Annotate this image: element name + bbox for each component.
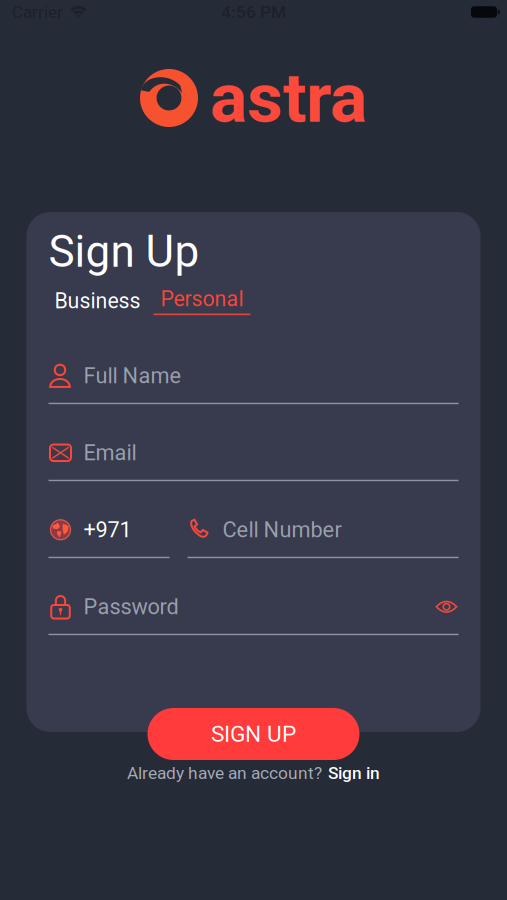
staticText: Personal: [160, 287, 243, 312]
staticText: SIGN UP: [211, 721, 296, 747]
button[interactable]: Business: [54, 288, 140, 313]
staticText: Business: [54, 288, 140, 313]
staticText: astra: [210, 57, 367, 139]
staticText: +971: [83, 517, 131, 542]
staticText: Already have an account?: [127, 763, 322, 783]
staticText: Email: [83, 440, 136, 465]
staticText: 4:56 PM: [221, 2, 286, 22]
staticText: Sign Up: [48, 226, 199, 278]
staticText: Password: [83, 594, 178, 619]
staticText: Sign in: [328, 763, 380, 783]
button[interactable]: Sign in: [328, 763, 380, 783]
staticText: Full Name: [83, 363, 181, 388]
staticText: Carrier: [12, 2, 63, 22]
button[interactable]: SIGN UP: [147, 708, 359, 760]
button[interactable]: Personal: [153, 287, 250, 315]
staticText: Cell Number: [222, 517, 341, 542]
